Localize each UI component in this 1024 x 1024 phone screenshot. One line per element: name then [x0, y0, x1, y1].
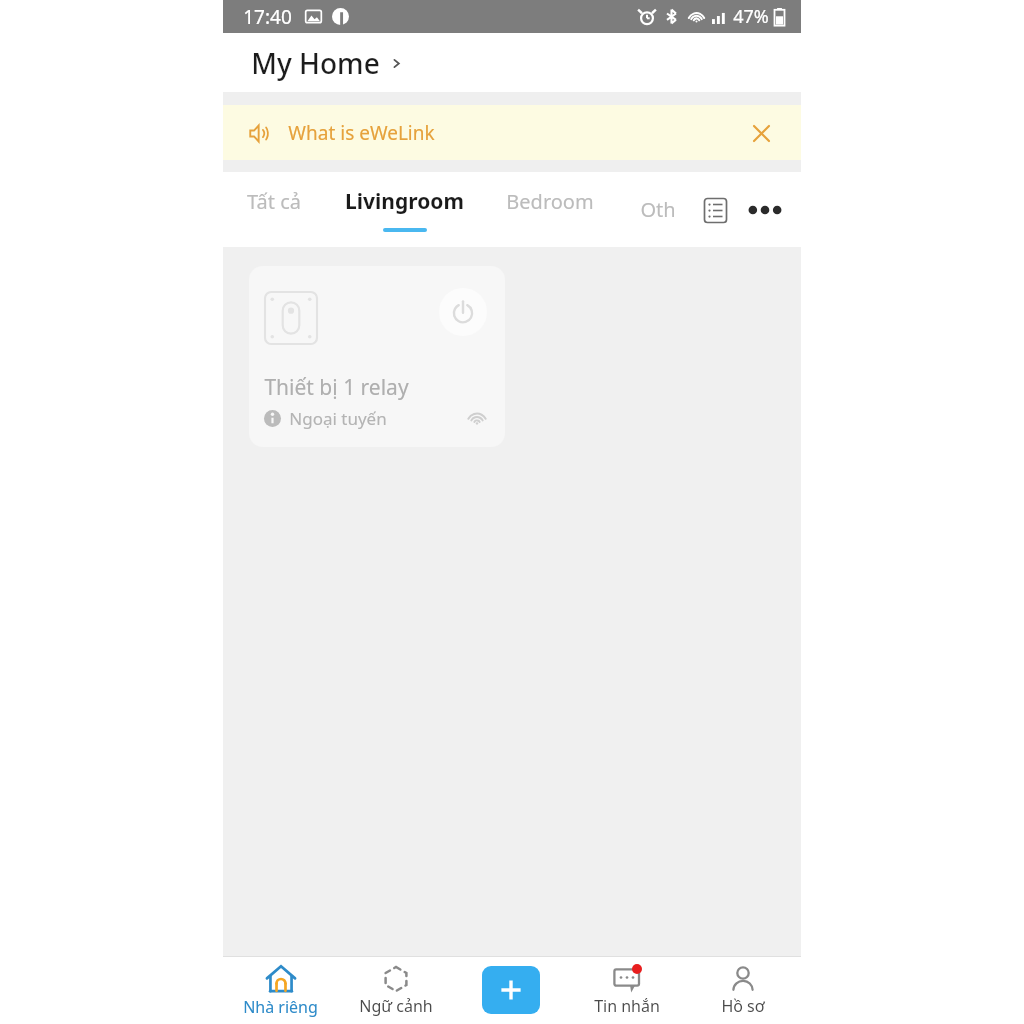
- button[interactable]: Nhà riêng: [223, 956, 338, 1024]
- staticText: Thiết bị 1 relay: [264, 373, 409, 402]
- button[interactable]: My Home: [251, 44, 403, 82]
- button[interactable]: Power toggle: [249, 266, 505, 447]
- button[interactable]: Bedroom: [506, 188, 594, 231]
- staticText: Ngoại tuyến: [289, 407, 387, 430]
- button[interactable]: Hồ sơ: [685, 956, 801, 1024]
- staticText: Hồ sơ: [721, 995, 765, 1017]
- staticText: Livingroom: [345, 187, 464, 216]
- button[interactable]: List view: [695, 190, 735, 230]
- staticText: Bedroom: [506, 188, 594, 215]
- staticText: My Home: [251, 44, 380, 82]
- button[interactable]: More options: [743, 188, 787, 232]
- staticText: Nhà riêng: [243, 996, 318, 1018]
- button[interactable]: Close banner: [745, 117, 777, 149]
- button[interactable]: What is eWeLink: [223, 105, 801, 160]
- button[interactable]: Ngữ cảnh: [338, 956, 453, 1024]
- staticText: Other: [636, 196, 680, 224]
- button[interactable]: Other: [636, 196, 680, 224]
- button[interactable]: Tất cả: [247, 188, 301, 231]
- staticText: Tin nhắn: [594, 995, 660, 1017]
- button[interactable]: Tin nhắn: [569, 956, 685, 1024]
- staticText: 17:40: [243, 4, 292, 30]
- staticText: Tất cả: [247, 188, 301, 215]
- staticText: Ngữ cảnh: [359, 995, 433, 1017]
- button[interactable]: Livingroom: [345, 187, 464, 232]
- button[interactable]: Add device: [482, 966, 540, 1014]
- staticText: 47%: [733, 4, 769, 29]
- staticText: What is eWeLink: [288, 120, 435, 146]
- button[interactable]: Power toggle: [439, 288, 487, 336]
